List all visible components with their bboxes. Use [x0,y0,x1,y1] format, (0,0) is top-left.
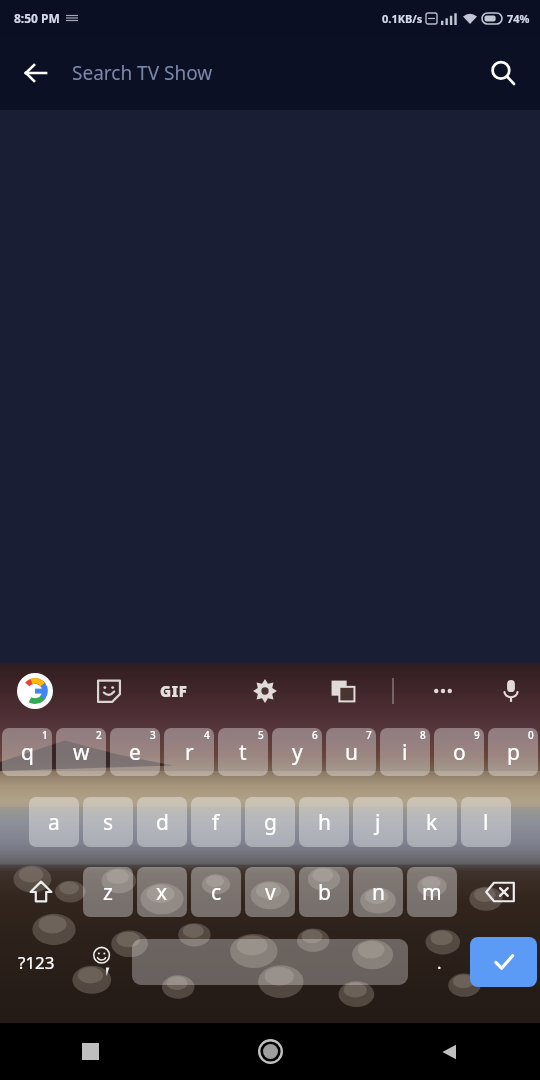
button[interactable] [164,728,214,776]
staticText: b [318,878,331,907]
staticText: 0 [528,728,534,742]
button[interactable] [353,797,403,847]
staticText: . [437,951,442,974]
button[interactable] [191,797,241,847]
staticText: z [103,878,113,907]
staticText: 8:50 PM [14,10,60,26]
button[interactable]: . [411,937,467,987]
button[interactable]: Settings [226,663,304,719]
staticText: 3 [150,728,156,742]
button[interactable]: Emoji and comma [73,937,129,987]
button[interactable] [272,728,322,776]
staticText: k [426,808,438,837]
button[interactable]: Google [0,663,70,719]
button[interactable]: Back [10,47,62,99]
staticText: 6 [312,728,318,742]
button[interactable] [110,728,160,776]
button[interactable] [488,728,538,776]
button[interactable] [353,867,403,917]
staticText: 9 [474,728,480,742]
staticText: 2 [96,728,102,742]
staticText: a [48,808,60,837]
staticText: m [422,878,442,907]
button[interactable]: Stickers [70,663,148,719]
button[interactable] [2,728,52,776]
staticText: y [292,738,303,767]
button[interactable]: Shift [0,867,81,917]
button[interactable] [83,797,133,847]
staticText: q [21,738,34,767]
button[interactable]: More options [404,663,482,719]
button[interactable] [29,797,79,847]
button[interactable] [461,797,511,847]
button[interactable]: GIF [148,663,226,719]
button[interactable] [137,867,187,917]
staticText: ?123 [18,951,55,974]
staticText: j [375,808,381,837]
button[interactable]: Search [477,47,529,99]
button[interactable]: Enter [470,937,537,987]
button[interactable] [245,797,295,847]
staticText: r [185,738,194,767]
staticText: 4 [204,728,210,742]
staticText: e [129,738,141,767]
button[interactable] [407,867,457,917]
button[interactable] [299,867,349,917]
button[interactable]: ?123 [0,937,73,987]
button[interactable]: Search TV Show [72,47,470,99]
staticText: c [211,878,222,907]
button[interactable] [245,867,295,917]
staticText: v [265,878,276,907]
staticText: 8 [420,728,426,742]
button[interactable] [191,867,241,917]
staticText: u [345,738,358,767]
button[interactable] [407,797,457,847]
button[interactable] [326,728,376,776]
staticText: 0.1KB/s [382,11,423,26]
staticText: s [103,808,114,837]
button[interactable]: Home [180,1023,360,1080]
button[interactable] [218,728,268,776]
staticText: w [73,738,90,767]
staticText: x [156,878,168,907]
staticText: 5 [258,728,264,742]
button[interactable] [56,728,106,776]
staticText: i [402,738,408,767]
staticText: Search TV Show [72,60,213,86]
staticText: o [453,738,466,767]
staticText: 1 [42,728,48,742]
staticText: n [372,878,385,907]
staticText: p [507,738,520,767]
button[interactable]: Voice input [482,663,540,719]
button[interactable]: Back [360,1023,540,1080]
staticText: l [483,808,489,837]
button[interactable] [83,867,133,917]
button[interactable]: Backspace [459,867,540,917]
staticText: d [156,808,169,837]
button[interactable]: Recents [0,1023,180,1080]
staticText: f [212,808,220,837]
staticText: GIF [160,681,188,701]
button[interactable] [434,728,484,776]
button[interactable] [137,797,187,847]
button[interactable] [299,797,349,847]
staticText: 74% [507,11,530,26]
staticText: h [318,808,331,837]
button[interactable]: Space [132,939,408,985]
staticText: 7 [366,728,372,742]
staticText: g [264,808,277,837]
button[interactable]: Translate [304,663,382,719]
staticText: t [239,738,247,767]
button[interactable] [380,728,430,776]
